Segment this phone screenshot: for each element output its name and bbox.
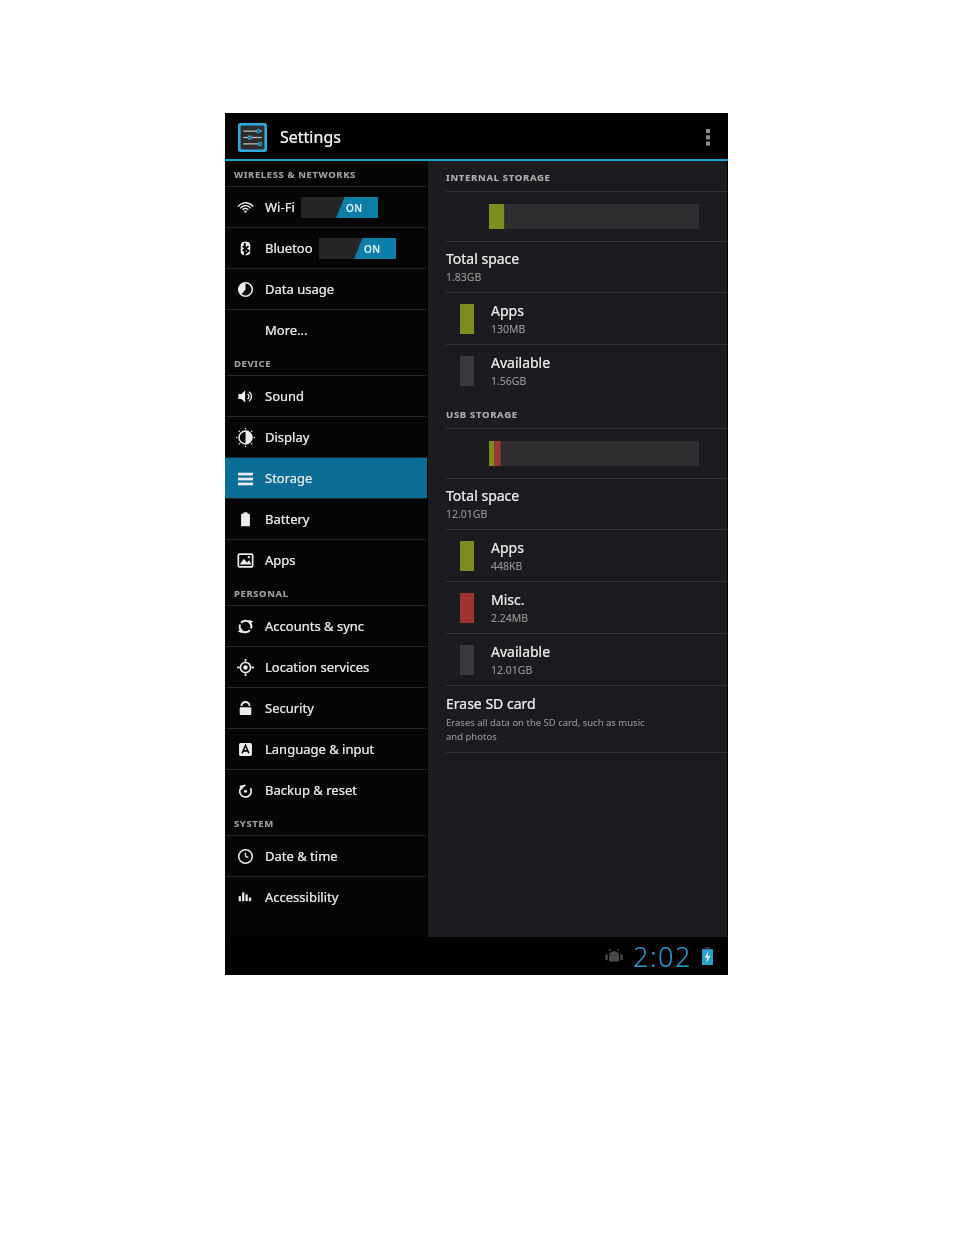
button[interactable]: Misc. [428,582,727,633]
staticText: 1.83GB [446,270,482,284]
button[interactable]: More options [688,113,728,161]
button[interactable]: Battery [225,499,427,539]
staticText: Display [265,428,310,446]
button[interactable]: Data usage [225,269,427,309]
staticText: Language & input [265,740,375,758]
staticText: Sound [265,387,305,405]
staticText: Bluetoo [265,239,313,257]
button[interactable]: Date & time [225,836,427,876]
button[interactable]: Available [428,345,727,396]
button[interactable]: Apps [225,540,427,580]
button[interactable]: Toggle on [301,197,378,218]
button[interactable]: Available [428,634,727,685]
staticText: Apps [491,301,524,320]
staticText: Battery [265,510,310,528]
staticText: Location services [265,658,370,676]
staticText: Erase SD card [446,694,536,713]
button[interactable]: Apps [428,530,727,581]
button[interactable]: Wi-Fi [225,187,427,227]
staticText: Accessibility [265,888,339,906]
button[interactable]: Battery charging [701,947,714,965]
staticText: Storage [265,469,313,487]
staticText: Backup & reset [265,781,357,799]
staticText: Available [491,642,551,661]
staticText: Misc. [491,590,525,609]
button[interactable]: Erase SD card [428,686,727,752]
button[interactable]: More... [225,310,427,350]
staticText: Date & time [265,847,338,865]
staticText: WIRELESS & NETWORKS [234,168,356,181]
staticText: Apps [491,538,524,557]
button[interactable]: Location services [225,647,427,687]
button[interactable]: Accounts & sync [225,606,427,646]
button[interactable]: Accessibility [225,877,427,917]
staticText: 130MB [491,322,526,336]
button[interactable]: Language & input [225,729,427,769]
staticText: Data usage [265,280,335,298]
button[interactable]: Total space [428,479,727,529]
staticText: More... [265,321,308,339]
staticText: Available [491,353,551,372]
staticText: 12.01GB [491,663,533,677]
staticText: 2:02 [633,938,692,975]
button[interactable]: Apps [428,293,727,344]
button[interactable]: Storage [225,458,427,498]
staticText: DEVICE [234,357,272,370]
button[interactable]: Sound [225,376,427,416]
staticText: Settings [280,126,341,148]
staticText: Security [265,699,314,717]
staticText: USB STORAGE [446,408,518,421]
staticText: 1.56GB [491,374,527,388]
staticText: and photos [446,730,497,743]
staticText: Total space [446,249,520,268]
staticText: 448KB [491,559,523,573]
staticText: 12.01GB [446,507,488,521]
staticText: 2.24MB [491,611,529,625]
staticText: SYSTEM [234,817,274,830]
staticText: ON [346,201,363,215]
button[interactable]: System notification [605,947,623,965]
staticText: Accounts & sync [265,617,365,635]
button[interactable]: Toggle on [319,238,396,259]
staticText: ON [364,242,381,256]
staticText: Apps [265,551,296,569]
staticText: PERSONAL [234,587,289,600]
button[interactable]: Backup & reset [225,770,427,810]
staticText: Total space [446,486,520,505]
staticText: INTERNAL STORAGE [446,171,551,184]
button[interactable]: Security [225,688,427,728]
button[interactable]: Display [225,417,427,457]
staticText: Erases all data on the SD card, such as … [446,716,645,729]
button[interactable]: Bluetoo [225,228,427,268]
button[interactable]: Settings app icon [238,123,267,152]
staticText: Wi-Fi [265,198,295,216]
button[interactable]: Total space [428,242,727,292]
